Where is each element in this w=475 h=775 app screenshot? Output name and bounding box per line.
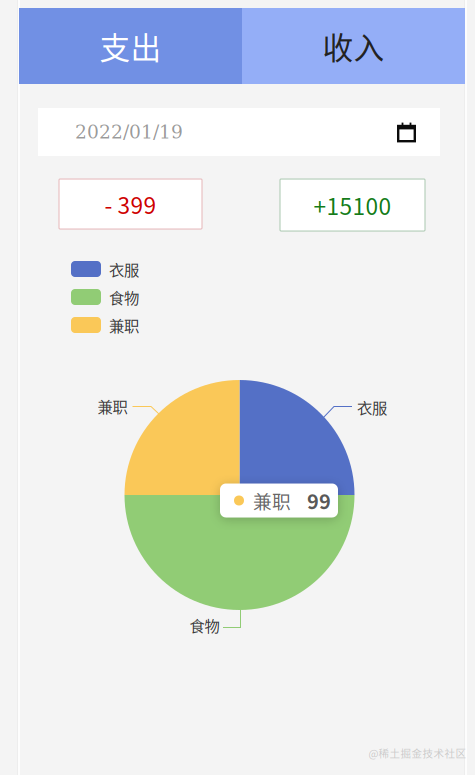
staticText: 兼职: [253, 487, 291, 514]
staticText: 收入: [322, 24, 384, 68]
staticText: +15100: [313, 189, 391, 221]
staticText: 衣服: [109, 258, 139, 280]
button[interactable]: 收入: [242, 8, 465, 84]
button[interactable]: 2022/01/19: [38, 108, 440, 156]
staticText: 99: [307, 486, 331, 515]
staticText: 食物: [189, 614, 219, 636]
staticText: - 399: [104, 188, 156, 220]
staticText: 衣服: [357, 396, 387, 418]
button[interactable]: 兼职: [71, 317, 201, 333]
button[interactable]: 支出: [19, 8, 242, 84]
staticText: 兼职: [109, 314, 139, 336]
staticText: 兼职: [97, 395, 127, 417]
button[interactable]: 衣服: [71, 261, 201, 277]
staticText: 支出: [99, 24, 161, 68]
button[interactable]: - 399: [59, 179, 202, 229]
button[interactable]: 食物: [71, 289, 201, 305]
button[interactable]: +15100: [280, 179, 425, 231]
staticText: 2022/01/19: [75, 121, 183, 143]
staticText: 食物: [109, 286, 139, 308]
staticText: @稀土掘金技术社区: [368, 745, 466, 761]
